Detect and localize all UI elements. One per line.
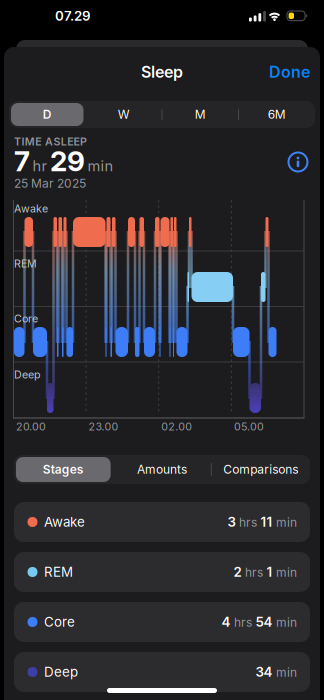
staticText: Core (44, 614, 75, 630)
staticText: min (276, 615, 297, 630)
button[interactable]: Awake (14, 502, 310, 542)
staticText: Amounts (137, 462, 187, 477)
button[interactable]: Core (14, 602, 310, 642)
staticText: Deep (14, 368, 41, 381)
staticText: 29 (50, 144, 85, 177)
staticText: TIME ASLEEP (14, 135, 87, 148)
staticText: 3 (227, 514, 235, 530)
button[interactable]: REM (14, 552, 310, 592)
button[interactable]: Stages (14, 455, 113, 484)
staticText: 54 (255, 614, 272, 630)
staticText: 05.00 (234, 420, 264, 433)
staticText: REM (14, 257, 37, 270)
staticText: 07.29 (55, 8, 91, 24)
staticText: Awake (14, 202, 48, 215)
button[interactable]: Amounts (113, 455, 211, 484)
staticText: 20.00 (16, 420, 46, 433)
staticText: Sleep (141, 63, 183, 81)
staticText: 7 (14, 144, 30, 177)
button[interactable]: W (85, 101, 162, 128)
staticText: 02.00 (161, 420, 192, 433)
staticText: 23.00 (89, 420, 119, 433)
staticText: Deep (44, 664, 78, 680)
button[interactable]: More information (288, 152, 308, 172)
staticText: W (118, 107, 130, 122)
staticText: Core (14, 312, 38, 325)
staticText: hrs (239, 515, 257, 530)
staticText: REM (44, 564, 73, 580)
staticText: M (195, 107, 206, 122)
staticText: min (87, 157, 113, 174)
button[interactable]: M (162, 101, 238, 128)
staticText: min (276, 665, 297, 680)
staticText: Stages (43, 462, 84, 477)
staticText: 2 (233, 564, 241, 580)
staticText: min (276, 515, 297, 530)
button[interactable]: Deep (14, 652, 310, 692)
staticText: min (276, 565, 297, 580)
staticText: 6M (268, 107, 286, 122)
button[interactable]: Done (246, 61, 310, 83)
staticText: 25 Mar 2025 (14, 176, 86, 191)
staticText: hr (32, 157, 47, 174)
staticText: D (43, 107, 52, 122)
staticText: hrs (245, 565, 263, 580)
button[interactable]: D (9, 101, 85, 128)
staticText: Comparisons (223, 462, 298, 477)
staticText: 11 (260, 514, 272, 530)
staticText: 34 (255, 664, 272, 680)
staticText: hrs (234, 615, 252, 630)
staticText: 1 (266, 564, 272, 580)
button[interactable]: Comparisons (211, 455, 310, 484)
button[interactable]: 6M (238, 101, 315, 128)
staticText: 4 (221, 614, 230, 630)
staticText: Awake (44, 514, 85, 530)
staticText: Done (269, 63, 310, 81)
